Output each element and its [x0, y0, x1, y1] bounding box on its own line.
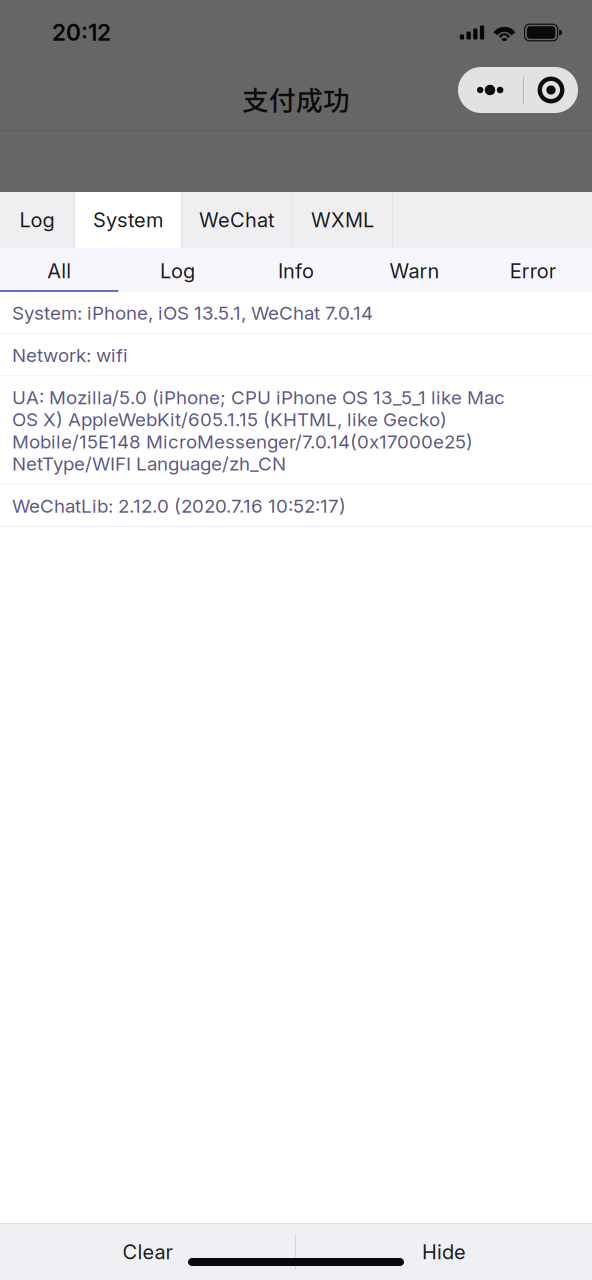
button[interactable]: Error	[474, 248, 592, 292]
button[interactable]: More options	[458, 67, 523, 113]
staticText: Info	[278, 259, 314, 283]
staticText: Error	[510, 259, 556, 283]
staticText: Warn	[389, 259, 439, 283]
button[interactable]: Log	[0, 192, 75, 248]
staticText: UA: Mozilla/5.0 (iPhone; CPU iPhone OS 1…	[12, 386, 505, 475]
button[interactable]: Log	[118, 248, 237, 292]
button[interactable]: Close mini program	[524, 67, 578, 113]
staticText: WeChat	[199, 208, 275, 232]
staticText: WeChatLib: 2.12.0 (2020.7.16 10:52:17)	[12, 495, 346, 517]
button[interactable]: WXML	[293, 192, 393, 248]
button[interactable]: All	[0, 248, 118, 292]
button[interactable]: System	[75, 192, 182, 248]
button[interactable]: Hide	[296, 1224, 592, 1280]
staticText: Log	[19, 208, 54, 232]
staticText: Network: wifi	[12, 344, 128, 366]
button[interactable]: Info	[237, 248, 355, 292]
staticText: Clear	[122, 1240, 172, 1264]
button[interactable]: Clear	[0, 1224, 295, 1280]
staticText: System	[93, 208, 163, 232]
button[interactable]: WeChat	[182, 192, 293, 248]
button[interactable]: Warn	[355, 248, 474, 292]
staticText: WXML	[311, 208, 374, 232]
staticText: 支付成功	[242, 79, 350, 118]
staticText: System: iPhone, iOS 13.5.1, WeChat 7.0.1…	[12, 302, 373, 324]
staticText: Hide	[422, 1240, 466, 1264]
staticText: Log	[160, 259, 195, 283]
staticText: All	[47, 259, 71, 283]
staticText: 20:12	[52, 19, 111, 46]
